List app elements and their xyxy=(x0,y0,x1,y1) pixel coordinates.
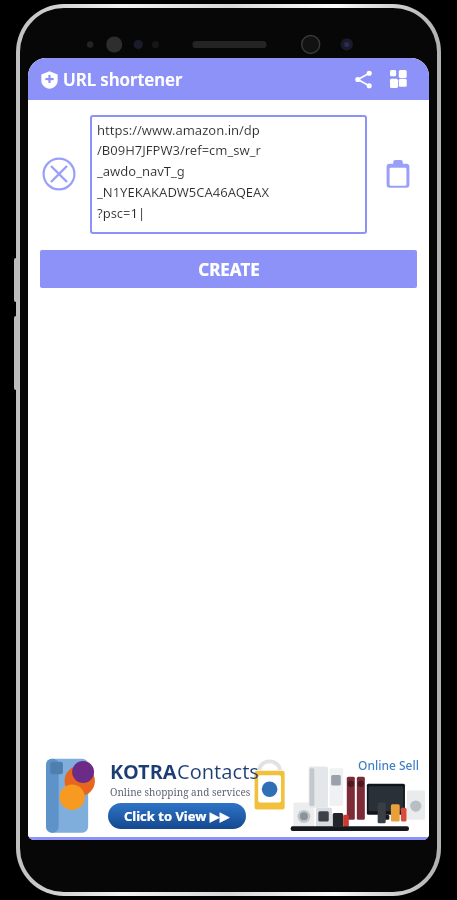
button[interactable]: Advertisement: KOTRAContacts online shop… xyxy=(28,751,429,837)
button[interactable]: Paste from clipboard xyxy=(367,114,429,234)
button[interactable]: https://www.amazon.in/dp /B09H7JFPW3/ref… xyxy=(90,115,367,234)
staticText: KOTRA xyxy=(110,758,177,785)
staticText: Click to View ▶▶ xyxy=(124,807,230,825)
button[interactable]: CREATE xyxy=(40,250,417,288)
button[interactable]: Apps xyxy=(381,61,417,97)
staticText: Online shopping and services xyxy=(110,785,251,799)
button[interactable]: Clear xyxy=(28,114,90,234)
staticText: CREATE xyxy=(198,258,260,281)
staticText: Online Sell xyxy=(358,757,419,773)
staticText: URL shortener xyxy=(63,68,183,91)
button[interactable]: Click to View ▶▶ xyxy=(108,803,246,829)
button[interactable]: Share xyxy=(345,61,381,97)
staticText: https://www.amazon.in/dp /B09H7JFPW3/ref… xyxy=(97,121,270,222)
staticText: Contacts xyxy=(177,758,259,785)
